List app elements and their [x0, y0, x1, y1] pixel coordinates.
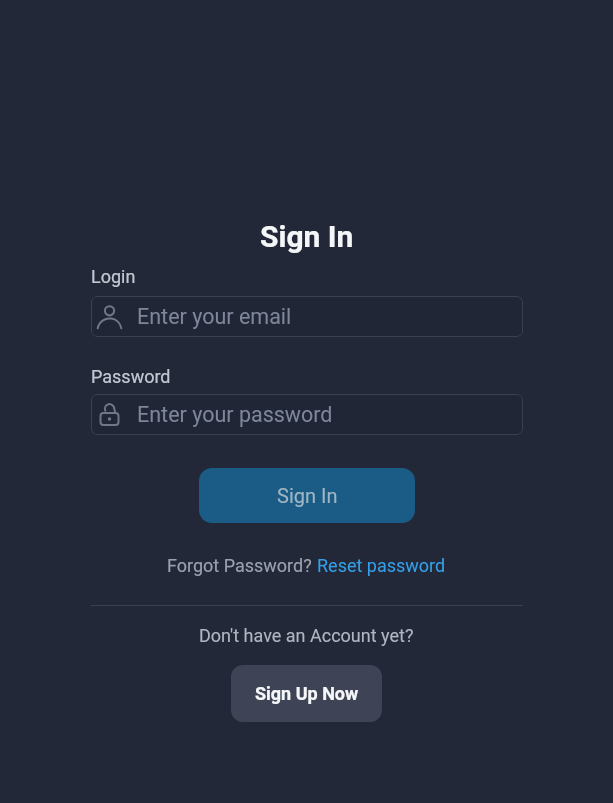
staticText: Enter your password: [137, 402, 333, 427]
button[interactable]: Sign Up Now: [231, 665, 382, 722]
button[interactable]: Sign In: [199, 468, 415, 523]
staticText: Password: [91, 366, 171, 387]
button[interactable]: Reset password: [317, 555, 446, 576]
staticText: Login: [91, 266, 136, 287]
button[interactable]: Enter your password: [91, 394, 523, 435]
button[interactable]: Enter your email: [91, 296, 523, 337]
staticText: Enter your email: [137, 304, 292, 329]
staticText: Sign In: [260, 219, 354, 254]
staticText: Don't have an Account yet?: [199, 625, 414, 646]
staticText: Sign In: [277, 484, 338, 507]
staticText: Sign Up Now: [255, 683, 359, 704]
staticText: Forgot Password?: [167, 555, 317, 576]
